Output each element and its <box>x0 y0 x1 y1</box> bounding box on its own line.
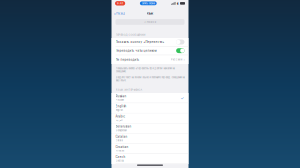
staticText: Не переводить <box>115 58 139 61</box>
staticText: English <box>115 109 122 111</box>
staticText: Català <box>115 139 122 142</box>
staticText: Catalan <box>115 135 127 138</box>
staticText: 9:41 <box>117 2 123 5</box>
staticText: ПЕРЕВОД СООБЩЕНИЙ <box>115 33 145 36</box>
button[interactable]: Catalan <box>111 134 188 144</box>
button[interactable]: Russian <box>111 93 188 103</box>
staticText: Запись экрана <box>142 2 155 5</box>
button[interactable]: Arabic <box>111 113 188 123</box>
staticText: ✓ <box>180 95 184 100</box>
staticText: Czech <box>115 155 125 159</box>
button[interactable]: Не переводить <box>111 55 188 64</box>
staticText: ЯЗЫК ИНТЕРФЕЙСА <box>115 88 142 91</box>
staticText: Belarusian <box>115 125 131 128</box>
staticText: Arabic <box>115 115 125 118</box>
staticText: ◖ <box>177 1 179 5</box>
staticText: Назад <box>116 12 125 15</box>
button[interactable]: English <box>111 103 188 113</box>
staticText: English <box>115 105 126 108</box>
staticText: Показывать кнопку «Перевести» при долгом… <box>115 67 174 73</box>
button[interactable]: Croatian <box>111 144 188 154</box>
staticText: ⌕ <box>144 20 146 24</box>
staticText: Беларуская <box>115 129 126 132</box>
staticText: Показать кнопку «Перевести» <box>115 40 164 44</box>
button[interactable]: Показать кнопку «Перевести» <box>111 38 188 47</box>
staticText: Croatian <box>115 145 128 149</box>
staticText: Язык <box>146 12 153 15</box>
staticText: Поиск <box>147 20 156 24</box>
staticText: Переводить чаты целиком <box>115 49 156 52</box>
button[interactable]: Переводить чаты целиком <box>111 46 188 55</box>
button[interactable]: Belarusian <box>111 123 188 134</box>
staticText: Čeština <box>115 159 123 162</box>
staticText: Русский <box>115 98 123 101</box>
staticText: Russian <box>115 94 126 98</box>
staticText: Русский <box>171 58 183 61</box>
staticText: ‹ <box>114 11 116 16</box>
button[interactable]: Czech <box>111 154 188 164</box>
staticText: العربية <box>115 119 122 122</box>
staticText: Вводите текст на любом языке и получайте… <box>115 76 184 82</box>
staticText: Hrvatski <box>115 149 124 152</box>
button[interactable]: ‹ <box>111 9 128 18</box>
